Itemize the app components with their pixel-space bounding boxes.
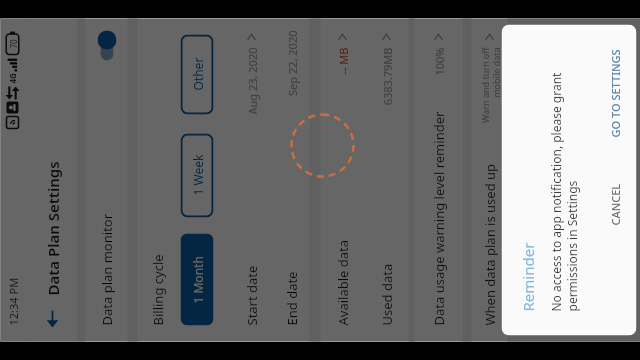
button[interactable]: Data plan monitor toggle	[95, 30, 117, 60]
button[interactable]: CANCEL	[600, 173, 629, 235]
staticText: 100%	[431, 47, 446, 76]
staticText: -- MB	[335, 47, 350, 75]
staticText: Sep 22, 2020	[284, 30, 299, 96]
button[interactable]: End date	[273, 18, 309, 341]
button[interactable]: Used data	[364, 18, 408, 341]
button[interactable]: 1 Week	[180, 133, 213, 217]
button[interactable]: 1 Month	[180, 233, 213, 325]
staticText: GO TO SETTINGS	[607, 48, 622, 137]
button[interactable]: GO TO SETTINGS	[600, 38, 629, 147]
staticText: When data plan is used up	[480, 163, 498, 325]
button[interactable]: Data usage warning level reminder	[414, 18, 462, 341]
staticText: Aug 23, 2020	[244, 47, 259, 115]
button[interactable]: Data plan monitor	[84, 18, 127, 341]
staticText: 1 Month	[189, 255, 205, 303]
button[interactable]: Other	[180, 34, 213, 114]
staticText: CANCEL	[607, 183, 622, 225]
staticText: 4G	[6, 72, 17, 83]
staticText: Data usage warning level reminder	[429, 111, 447, 325]
staticText: Used data	[377, 263, 395, 325]
button[interactable]: Start date	[229, 18, 273, 341]
staticText: Billing cycle	[148, 253, 166, 325]
staticText: Reminder	[517, 242, 537, 311]
staticText: 70	[7, 38, 18, 48]
staticText: End date	[282, 271, 300, 325]
staticText: Available data	[333, 239, 351, 325]
staticText: 6383.79MB	[379, 47, 394, 105]
staticText: 12:34 PM	[5, 277, 20, 325]
staticText: 1 Week	[189, 154, 205, 195]
staticText: Start date	[242, 265, 260, 325]
button[interactable]: When data plan is used up	[471, 18, 507, 341]
staticText: Other	[189, 57, 205, 90]
staticText: Data plan monitor	[97, 213, 115, 325]
staticText: Data Plan Settings	[42, 160, 62, 295]
button[interactable]: Available data	[320, 18, 364, 341]
staticText: Warn and turn off mobile data	[478, 47, 501, 123]
button[interactable]: Back	[30, 297, 74, 341]
staticText: No access to app notification, please gr…	[547, 48, 579, 311]
